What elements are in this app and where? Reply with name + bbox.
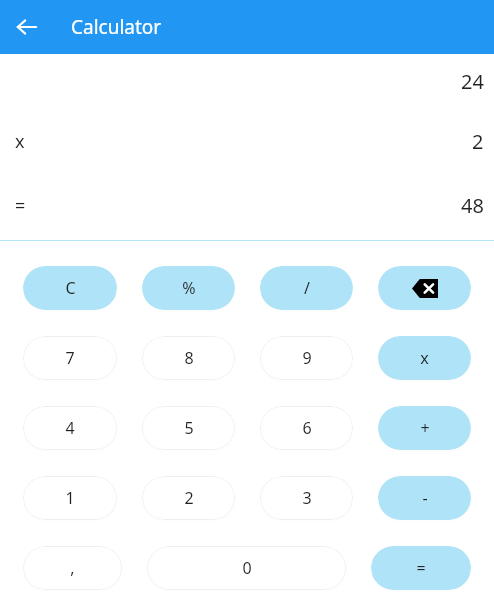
staticText: 4	[65, 417, 75, 439]
staticText: +	[420, 417, 430, 439]
staticText: ,	[70, 557, 75, 579]
staticText: %	[182, 277, 196, 299]
staticText: =	[15, 193, 26, 218]
button[interactable]: 5	[142, 406, 235, 450]
button[interactable]: x	[378, 336, 471, 380]
button[interactable]: Backspace	[378, 266, 471, 310]
staticText: /	[304, 277, 310, 299]
button[interactable]: C	[23, 266, 117, 310]
staticText: 24	[461, 68, 484, 95]
staticText: x	[420, 347, 429, 369]
button[interactable]: 7	[23, 336, 117, 380]
button[interactable]: ,	[23, 546, 122, 590]
button[interactable]: +	[378, 406, 471, 450]
button[interactable]: 0	[147, 546, 346, 590]
staticText: 7	[65, 347, 75, 369]
staticText: x	[15, 129, 25, 154]
staticText: C	[65, 277, 76, 299]
button[interactable]: %	[142, 266, 235, 310]
staticText: 2	[184, 487, 194, 509]
staticText: 6	[302, 417, 312, 439]
button[interactable]: 4	[23, 406, 117, 450]
button[interactable]: =	[371, 546, 471, 590]
button[interactable]: /	[260, 266, 353, 310]
staticText: 2	[472, 128, 484, 155]
button[interactable]: 2	[142, 476, 235, 520]
staticText: Calculator	[71, 14, 162, 40]
staticText: 8	[184, 347, 194, 369]
staticText: 5	[184, 417, 194, 439]
button[interactable]: 9	[260, 336, 353, 380]
button[interactable]: Back	[9, 9, 45, 45]
button[interactable]: 6	[260, 406, 353, 450]
staticText: -	[422, 487, 428, 509]
button[interactable]: 3	[260, 476, 353, 520]
staticText: 3	[302, 487, 312, 509]
staticText: 0	[242, 557, 252, 579]
button[interactable]: -	[378, 476, 471, 520]
staticText: =	[416, 557, 426, 579]
staticText: 9	[302, 347, 312, 369]
staticText: 1	[65, 487, 75, 509]
button[interactable]: 8	[142, 336, 235, 380]
staticText: 48	[461, 192, 484, 219]
button[interactable]: 1	[23, 476, 117, 520]
